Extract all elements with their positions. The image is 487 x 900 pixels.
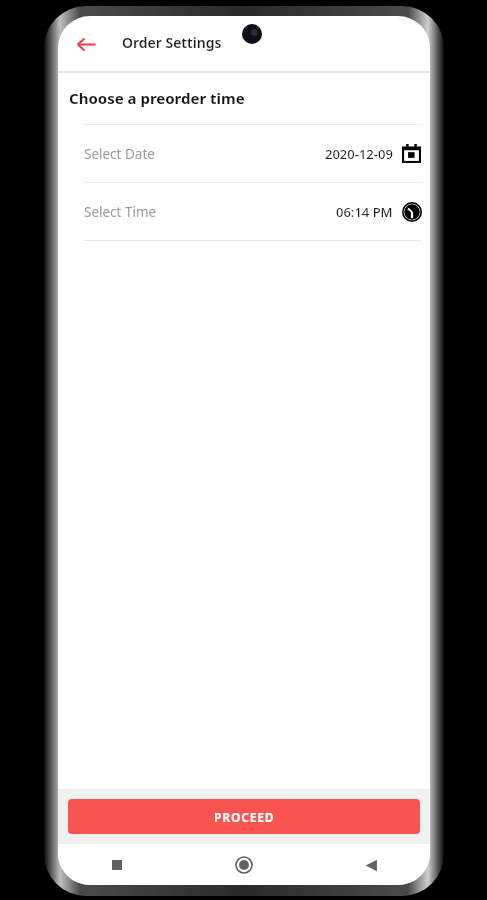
staticText: 06:14 PM [336, 203, 393, 221]
staticText: 2020-12-09 [325, 145, 393, 163]
staticText: PROCEED [214, 809, 275, 825]
button[interactable]: Back [66, 24, 106, 64]
button[interactable]: Select Time [58, 183, 430, 240]
staticText: Select Time [84, 203, 157, 221]
staticText: Choose a preorder time [69, 88, 245, 108]
button[interactable]: Select Date [58, 125, 430, 182]
button[interactable]: Home [227, 848, 261, 882]
button[interactable]: Back [354, 848, 388, 882]
button[interactable]: PROCEED [68, 799, 420, 834]
staticText: Order Settings [122, 33, 222, 52]
staticText: Select Date [84, 145, 155, 163]
button[interactable]: Recents [100, 848, 134, 882]
